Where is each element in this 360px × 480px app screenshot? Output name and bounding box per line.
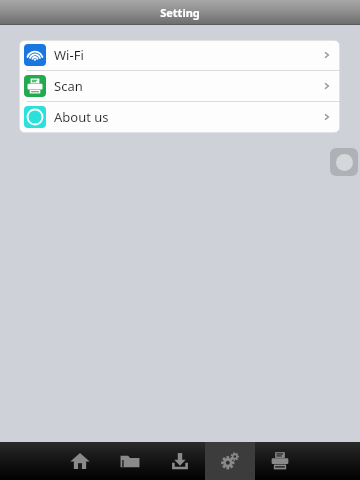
button[interactable]: Download [155, 442, 205, 480]
staticText: Setting [160, 5, 200, 20]
button[interactable]: Scan [19, 71, 340, 101]
button[interactable]: Settings [205, 442, 255, 480]
button[interactable]: Wi-Fi [19, 40, 340, 70]
staticText: Wi-Fi [54, 46, 84, 64]
button[interactable]: Print [255, 442, 305, 480]
button[interactable]: About us [19, 102, 340, 132]
staticText: Scan [54, 77, 83, 95]
button[interactable]: Files [105, 442, 155, 480]
button[interactable]: Home [55, 442, 105, 480]
button[interactable]: Refresh [330, 148, 358, 176]
staticText: About us [54, 108, 109, 126]
